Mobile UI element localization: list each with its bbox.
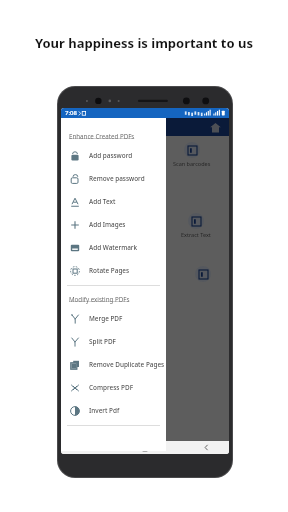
staticText: Scan barcodes xyxy=(173,160,211,167)
staticText: Add password xyxy=(89,151,133,160)
staticText: 7:08 xyxy=(65,109,77,117)
staticText: Remove Duplicate Pages xyxy=(89,360,165,369)
button[interactable]: Recents xyxy=(77,441,91,454)
button[interactable]: Remove Duplicate Pages xyxy=(61,353,166,376)
button[interactable]: Merge PDF xyxy=(61,307,166,330)
button[interactable]: Add Images xyxy=(61,213,166,236)
staticText: Enhance Created PDFs xyxy=(69,132,135,140)
staticText: Compress PDF xyxy=(89,383,134,392)
staticText: Add Watermark xyxy=(89,243,138,252)
staticText: Add Images xyxy=(89,220,126,229)
staticText: Rotate Pages xyxy=(89,266,130,275)
staticText: Extract Text xyxy=(181,231,211,238)
button[interactable]: Back xyxy=(199,441,213,454)
staticText: Modify existing PDFs xyxy=(69,295,130,303)
staticText: Your happiness is important to us xyxy=(35,34,253,52)
button[interactable]: Rotate Pages xyxy=(61,259,166,282)
button[interactable]: Invert Pdf xyxy=(61,399,166,422)
button[interactable]: Add Text xyxy=(61,190,166,213)
staticText: Split PDF xyxy=(89,337,116,346)
button[interactable]: Split PDF xyxy=(61,330,166,353)
button[interactable]: Remove password xyxy=(61,167,166,190)
staticText: Merge PDF xyxy=(89,314,123,323)
staticText: Add Text xyxy=(89,197,116,206)
button[interactable]: Add password xyxy=(61,144,166,167)
staticText: Remove password xyxy=(89,174,145,183)
button[interactable]: Compress PDF xyxy=(61,376,166,399)
button[interactable]: Add Watermark xyxy=(61,236,166,259)
staticText: Invert Pdf xyxy=(89,406,120,415)
button[interactable]: Home xyxy=(207,119,223,135)
button[interactable]: Home xyxy=(138,441,152,454)
